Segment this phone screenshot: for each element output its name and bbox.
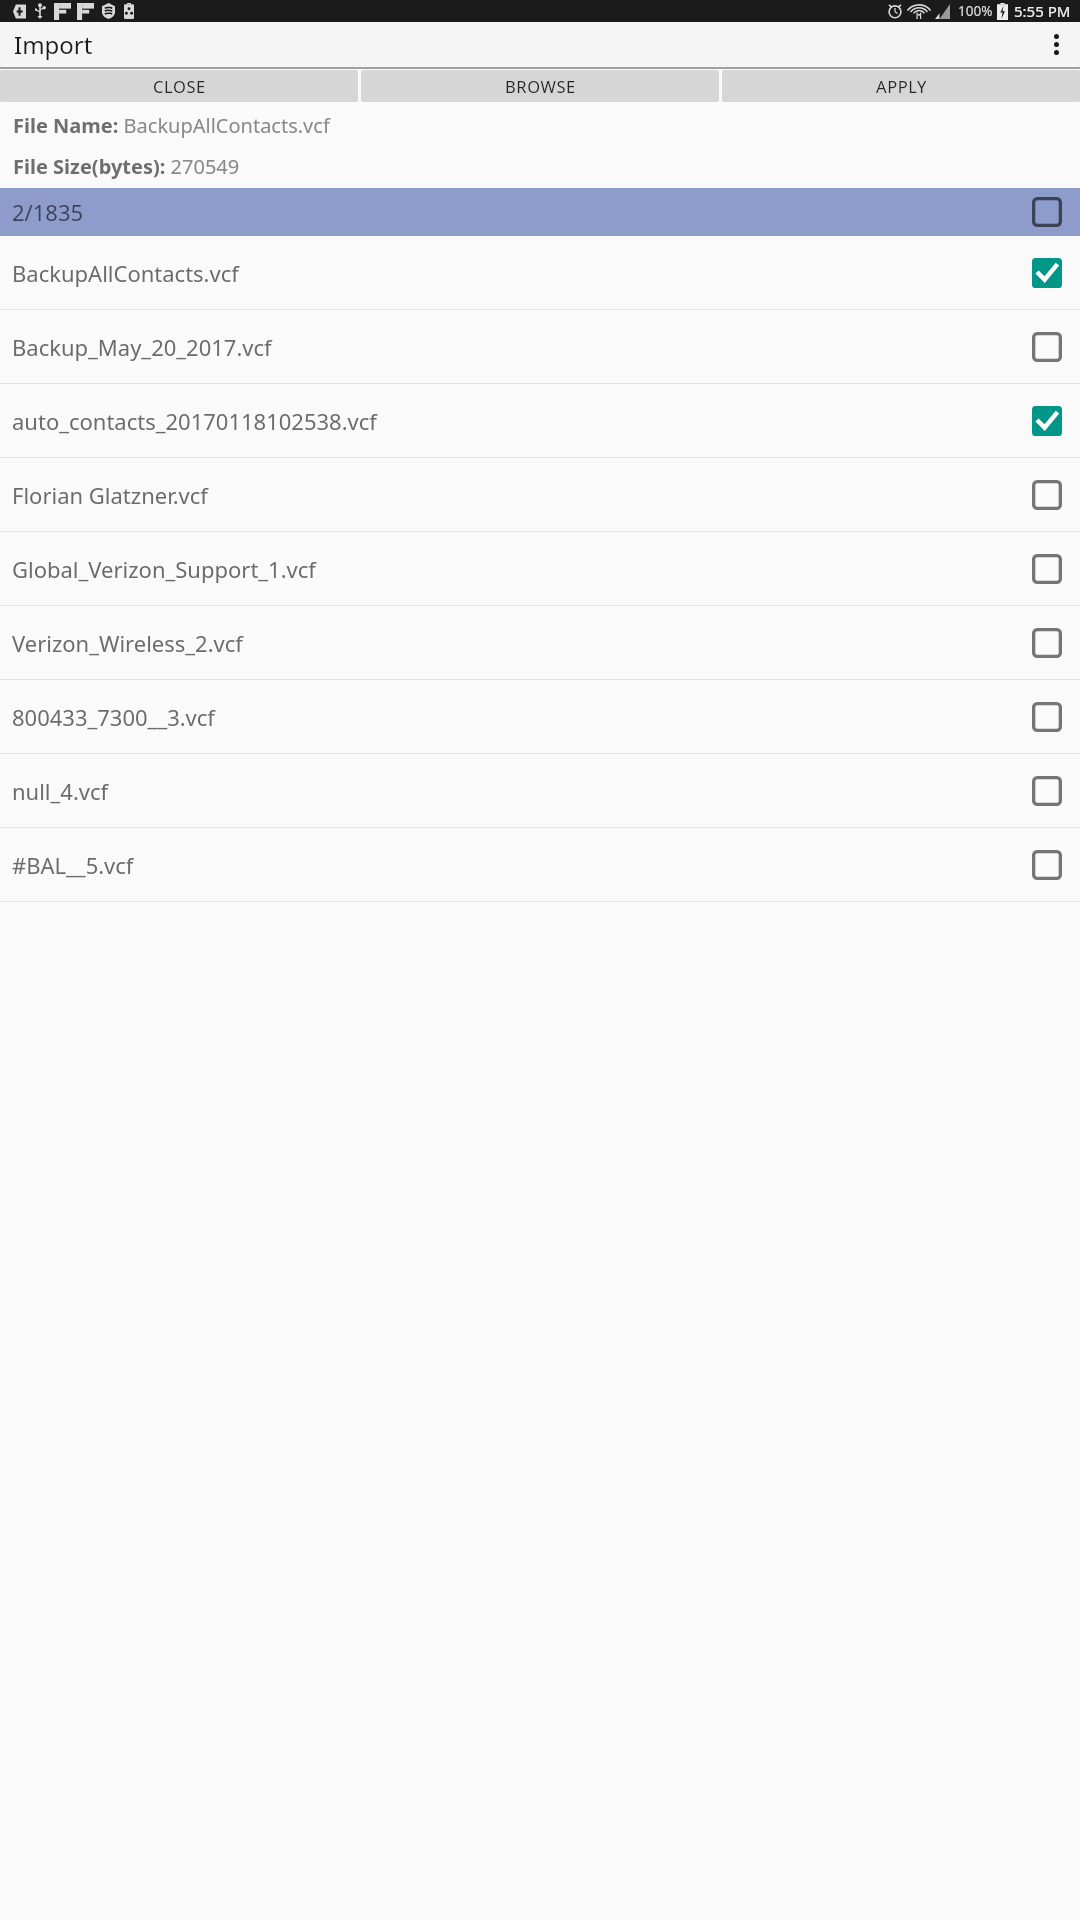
button[interactable]: Global_Verizon_Support_1.vcf xyxy=(0,532,1080,605)
staticText: auto_contacts_20170118102538.vcf xyxy=(12,406,377,436)
button[interactable]: 2/1835 xyxy=(0,188,1080,236)
staticText: Import xyxy=(14,28,93,61)
staticText: 5:55 PM xyxy=(1014,1,1071,21)
button[interactable]: CLOSE xyxy=(0,70,358,102)
staticText: 2/1835 xyxy=(12,197,84,227)
button[interactable]: null_4.vcf xyxy=(0,754,1080,827)
button[interactable]: Florian Glatzner.vcf xyxy=(0,458,1080,531)
staticText: File Name: BackupAllContacts.vcf xyxy=(13,112,330,139)
button[interactable]: BROWSE xyxy=(361,70,719,102)
staticText: BROWSE xyxy=(505,75,576,97)
staticText: File Size(bytes): 270549 xyxy=(13,153,240,180)
button[interactable]: #BAL__5.vcf xyxy=(0,828,1080,901)
button[interactable]: auto_contacts_20170118102538.vcf xyxy=(0,384,1080,457)
staticText: CLOSE xyxy=(153,75,206,97)
staticText: 800433_7300__3.vcf xyxy=(12,702,215,732)
staticText: Global_Verizon_Support_1.vcf xyxy=(12,554,316,584)
staticText: BackupAllContacts.vcf xyxy=(12,258,239,288)
button[interactable]: More options xyxy=(1032,22,1080,67)
button[interactable]: Backup_May_20_2017.vcf xyxy=(0,310,1080,383)
staticText: 100% xyxy=(958,2,993,20)
staticText: #BAL__5.vcf xyxy=(12,850,134,880)
button[interactable]: 800433_7300__3.vcf xyxy=(0,680,1080,753)
staticText: Backup_May_20_2017.vcf xyxy=(12,332,272,362)
staticText: APPLY xyxy=(876,75,927,97)
button[interactable]: APPLY xyxy=(722,70,1080,102)
staticText: Florian Glatzner.vcf xyxy=(12,480,208,510)
staticText: Verizon_Wireless_2.vcf xyxy=(12,628,243,658)
staticText: null_4.vcf xyxy=(12,776,109,806)
button[interactable]: Verizon_Wireless_2.vcf xyxy=(0,606,1080,679)
button[interactable]: BackupAllContacts.vcf xyxy=(0,236,1080,309)
